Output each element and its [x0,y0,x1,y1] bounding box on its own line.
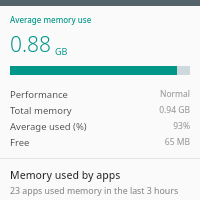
staticText: Performance [10,88,68,101]
staticText: Total memory [10,104,72,117]
staticText: Average memory use [10,14,92,25]
staticText: 0.94 GB [159,104,190,116]
staticText: Normal [159,88,190,100]
staticText: Average used (%) [10,120,87,133]
staticText: Free [10,136,30,149]
staticText: 23 apps used memory in the last 3 hours [10,185,179,197]
staticText: 93% [173,120,190,132]
button[interactable]: Total memory [10,102,190,118]
button[interactable]: Memory used by apps [0,168,200,197]
button[interactable]: Performance [10,86,190,102]
staticText: 0.88 [10,30,52,59]
staticText: Memory used by apps [10,168,121,182]
button[interactable]: Free [10,134,190,150]
staticText: GB [55,45,68,57]
staticText: 65 MB [164,136,190,148]
button[interactable]: Average used (%) [10,118,190,134]
